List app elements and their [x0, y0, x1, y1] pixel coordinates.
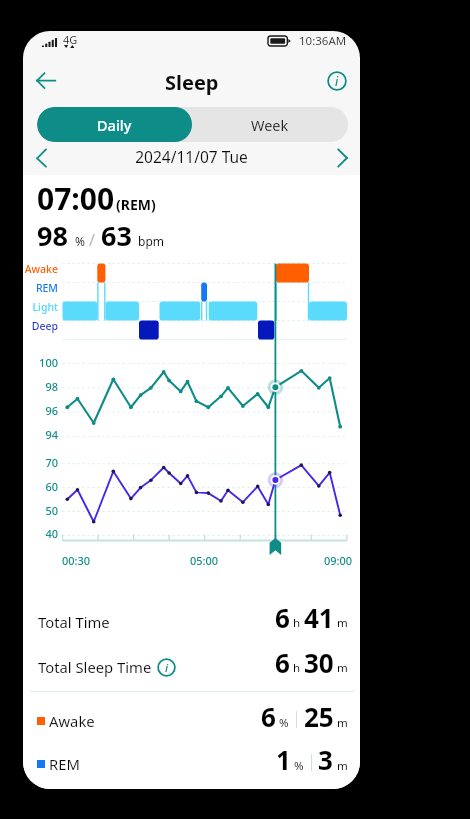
staticText: 40 [23, 526, 58, 541]
staticText: i [165, 660, 169, 676]
staticText: 4G [63, 32, 360, 47]
staticText: m [337, 615, 360, 631]
button[interactable]: Daily [37, 107, 192, 142]
staticText: Total Time [38, 612, 338, 632]
button[interactable]: Week [192, 107, 348, 142]
staticText: Total Sleep Time [38, 657, 338, 677]
staticText: 98 [37, 217, 337, 254]
staticText: % [75, 233, 360, 249]
staticText: m [337, 715, 360, 731]
staticText: % [294, 758, 360, 774]
staticText: h [293, 660, 360, 676]
staticText: i [335, 73, 339, 89]
staticText: (REM) [116, 195, 360, 214]
staticText: Light [23, 300, 58, 314]
staticText: h [293, 615, 360, 631]
staticText: Awake [23, 262, 58, 276]
staticText: Week [251, 115, 289, 135]
staticText: 98 [23, 379, 58, 394]
staticText: 60 [23, 479, 58, 494]
button[interactable]: Next day [329, 144, 358, 172]
staticText: 25 [304, 699, 360, 734]
button[interactable] [30, 703, 355, 743]
staticText: Deep [23, 319, 58, 333]
staticText: 100 [23, 355, 58, 370]
button[interactable]: Info [322, 66, 352, 96]
staticText: 6 [275, 645, 360, 680]
button[interactable]: Previous day [27, 144, 56, 172]
staticText: 05:00 [182, 553, 226, 568]
staticText: 1 [276, 742, 360, 777]
staticText: Daily [97, 115, 132, 135]
staticText: 07:00 [37, 178, 337, 219]
staticText: REM [49, 754, 349, 774]
staticText: Sleep [165, 69, 219, 96]
staticText: 96 [23, 403, 58, 418]
staticText: 2024/11/07 Tue [23, 146, 360, 167]
staticText: 3 [318, 742, 360, 777]
staticText: 70 [23, 455, 58, 470]
staticText: 10:36AM [299, 33, 360, 49]
button[interactable] [30, 604, 355, 644]
staticText: 63 [101, 217, 360, 254]
staticText: / [89, 229, 360, 251]
staticText: m [337, 758, 360, 774]
staticText: REM [23, 281, 58, 295]
staticText: % [279, 715, 360, 731]
staticText: bpm [138, 233, 360, 249]
staticText: 09:00 [316, 553, 360, 568]
staticText: 6 [261, 699, 360, 734]
staticText: 94 [23, 427, 58, 442]
staticText: 50 [23, 503, 58, 518]
staticText: m [337, 660, 360, 676]
staticText: 41 [304, 600, 360, 635]
staticText: 30 [304, 645, 360, 680]
button[interactable]: Back [25, 60, 67, 102]
staticText: 00:30 [54, 553, 98, 568]
staticText: 6 [275, 600, 360, 635]
button[interactable] [30, 649, 355, 689]
staticText: Awake [49, 711, 349, 731]
button[interactable] [30, 746, 355, 786]
